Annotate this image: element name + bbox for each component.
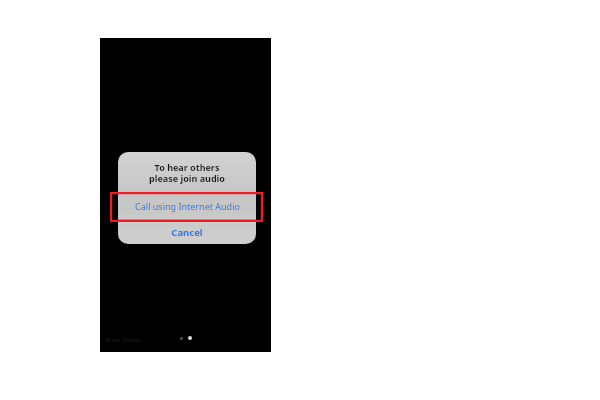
button[interactable]: Call using Internet Audio — [118, 193, 256, 219]
button[interactable]: Cancel — [118, 220, 256, 244]
staticText: To hear others please join audio — [149, 161, 225, 184]
other: Highlight annotation — [110, 192, 263, 222]
staticText: Breno Cardoso — [106, 337, 141, 344]
staticText: Cancel — [171, 226, 203, 239]
staticText: Call using Internet Audio — [135, 200, 240, 212]
